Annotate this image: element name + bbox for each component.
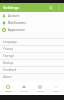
staticText: Storage xyxy=(3,54,14,58)
button[interactable]: Notifications xyxy=(0,19,64,26)
staticText: Language xyxy=(3,40,18,44)
staticText: Groups xyxy=(20,90,28,93)
staticText: Notifications xyxy=(8,21,26,25)
staticText: Settings xyxy=(3,5,20,11)
button[interactable]: Account xyxy=(0,12,64,19)
button[interactable]: Feedback xyxy=(0,67,64,73)
staticText: More xyxy=(53,90,59,93)
button[interactable]: Backup xyxy=(0,60,64,66)
staticText: Account xyxy=(8,14,20,18)
staticText: Feedback xyxy=(3,68,17,72)
button[interactable]: Home xyxy=(0,82,16,95)
staticText: Appearance xyxy=(8,28,25,32)
staticText: Home xyxy=(5,90,12,93)
button[interactable]: More options xyxy=(55,4,62,11)
button[interactable]: Language xyxy=(0,39,64,45)
staticText: Backup xyxy=(3,61,14,65)
staticText: Alerts xyxy=(37,90,44,93)
button[interactable]: More xyxy=(48,82,64,95)
staticText: Privacy xyxy=(3,47,14,51)
button[interactable]: Search xyxy=(47,4,54,11)
button[interactable]: About xyxy=(0,74,64,80)
button[interactable]: Appearance xyxy=(0,26,64,33)
button[interactable]: Storage xyxy=(0,53,64,59)
staticText: About xyxy=(3,75,12,79)
button[interactable]: Privacy xyxy=(0,46,64,52)
button[interactable]: Alerts xyxy=(32,82,48,95)
button[interactable]: Groups xyxy=(16,82,32,95)
